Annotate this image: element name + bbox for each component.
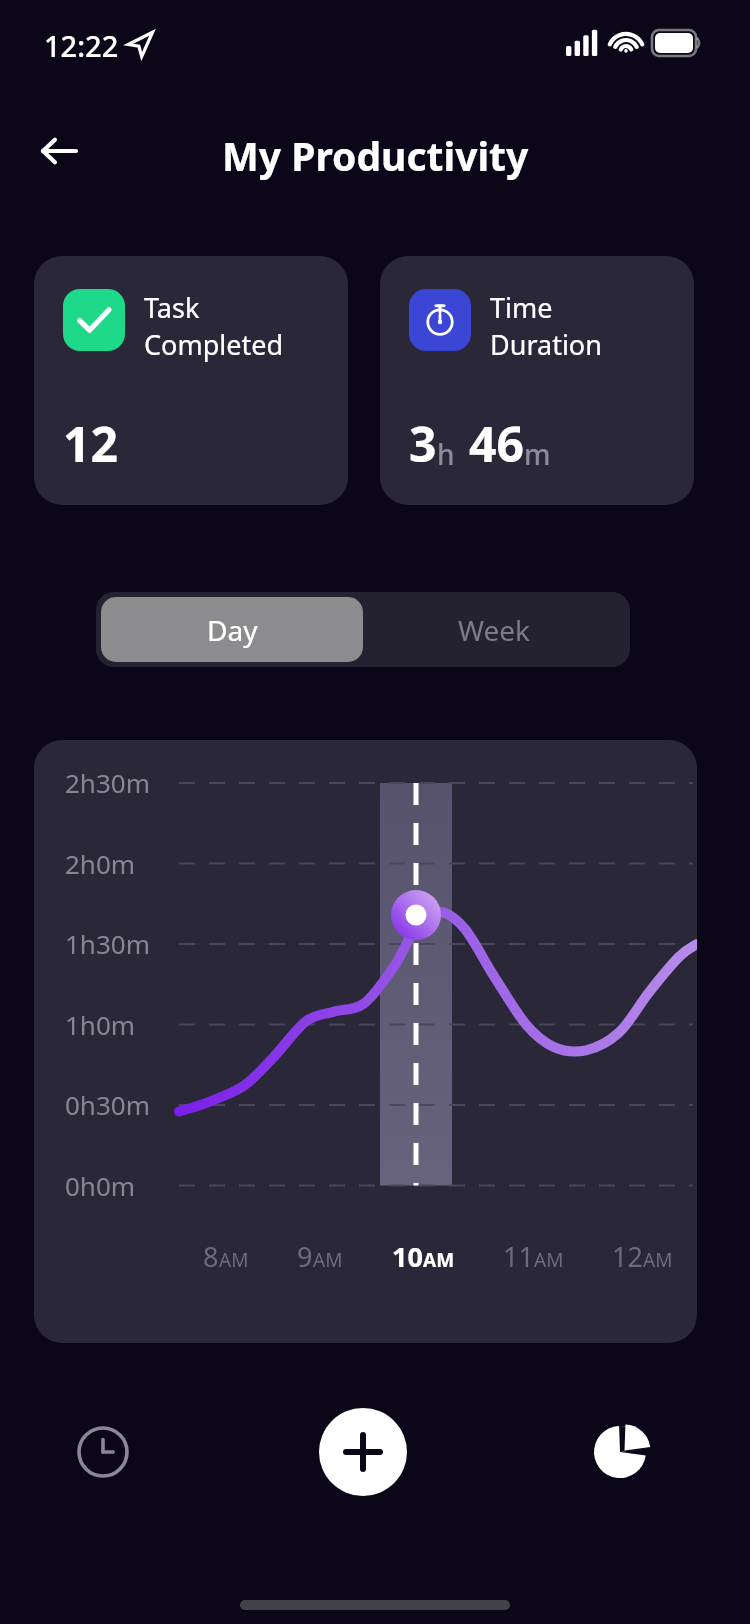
button[interactable]: Add bbox=[319, 1408, 407, 1496]
staticText: 12:22 bbox=[44, 26, 119, 65]
staticText: My Productivity bbox=[222, 129, 529, 182]
staticText: 8 bbox=[203, 1238, 219, 1275]
staticText: 9 bbox=[297, 1238, 313, 1275]
staticText: 12 bbox=[63, 411, 118, 476]
staticText: AM bbox=[643, 1247, 673, 1273]
staticText: m bbox=[524, 435, 551, 473]
staticText: 2h0m bbox=[65, 846, 136, 881]
staticText: h bbox=[437, 435, 455, 473]
staticText: AM bbox=[219, 1247, 249, 1273]
staticText: 10 bbox=[392, 1238, 423, 1275]
staticText: 12 bbox=[612, 1238, 643, 1275]
staticText: 3 bbox=[409, 411, 437, 476]
staticText: Week bbox=[458, 611, 531, 649]
staticText: 1h0m bbox=[65, 1007, 136, 1042]
staticText: AM bbox=[534, 1247, 564, 1273]
button[interactable]: Back bbox=[26, 118, 92, 184]
staticText: AM bbox=[313, 1247, 343, 1273]
staticText: 46 bbox=[469, 411, 524, 476]
button[interactable]: Task bbox=[34, 256, 348, 505]
staticText: 1h30m bbox=[65, 926, 150, 961]
button[interactable]: Day bbox=[101, 597, 363, 662]
staticText: 2h30m bbox=[65, 765, 150, 800]
button[interactable]: Week bbox=[363, 597, 625, 662]
staticText: Completed bbox=[144, 326, 284, 363]
button[interactable]: History bbox=[58, 1407, 148, 1497]
staticText: AM bbox=[423, 1247, 455, 1273]
staticText: Day bbox=[207, 611, 258, 649]
staticText: Duration bbox=[490, 326, 602, 363]
button[interactable]: Statistics bbox=[575, 1407, 665, 1497]
staticText: Time bbox=[490, 289, 553, 326]
staticText: 0h30m bbox=[65, 1087, 150, 1122]
staticText: 0h0m bbox=[65, 1168, 136, 1203]
staticText: Task bbox=[144, 289, 200, 326]
staticText: 11 bbox=[503, 1238, 534, 1275]
button[interactable]: Time bbox=[380, 256, 694, 505]
